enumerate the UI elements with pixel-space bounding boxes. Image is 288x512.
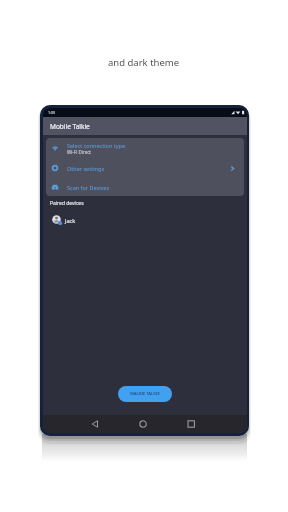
staticText: Select connection type [67, 142, 126, 149]
button[interactable] [43, 415, 111, 433]
staticText: Jack [65, 217, 76, 224]
button[interactable] [111, 415, 179, 433]
staticText: and dark theme [108, 56, 180, 69]
staticText: Wi-Fi Direct [67, 149, 91, 155]
button[interactable]: Select connection type [46, 138, 244, 158]
button[interactable]: Jack [43, 214, 247, 226]
staticText: Paired devices [50, 200, 84, 207]
staticText: Mobile Talkie [50, 122, 90, 131]
staticText: Scan for Devices [67, 184, 110, 191]
staticText: 1:00 [48, 110, 55, 115]
button[interactable]: WALKIE TALKIE [118, 386, 172, 402]
button[interactable]: Scan for Devices [46, 178, 244, 196]
button[interactable]: Other settings [46, 158, 244, 178]
button[interactable] [179, 415, 247, 433]
staticText: WALKIE TALKIE [130, 391, 160, 397]
staticText: Other settings [67, 165, 105, 172]
